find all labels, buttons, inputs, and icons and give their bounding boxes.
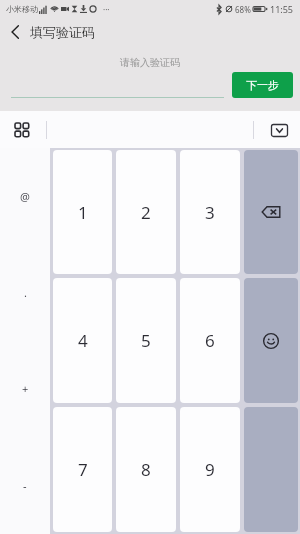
button[interactable]: 键盘布局 — [10, 118, 34, 142]
staticText: 8 — [141, 458, 151, 481]
button[interactable]: 收起键盘 — [266, 117, 292, 143]
button[interactable]: 功能键 — [244, 278, 298, 403]
staticText: 5 — [141, 329, 151, 352]
button[interactable]: - — [0, 437, 50, 534]
button[interactable]: 下一步 — [232, 72, 293, 98]
staticText: ··· — [103, 4, 110, 15]
button[interactable]: 5 — [116, 278, 176, 403]
staticText: 7 — [78, 458, 88, 481]
staticText: 6 — [205, 329, 215, 352]
button[interactable]: 返回 — [0, 18, 30, 46]
button[interactable]: 9 — [180, 407, 240, 532]
staticText: . — [24, 285, 27, 300]
button[interactable]: 6 — [180, 278, 240, 403]
staticText: 3 — [205, 201, 215, 224]
staticText: 4 — [78, 329, 88, 352]
button[interactable]: 7 — [53, 407, 112, 532]
button[interactable]: 1 — [53, 150, 112, 274]
staticText: 11:55 — [270, 3, 294, 15]
staticText: 9 — [205, 458, 215, 481]
button[interactable]: 功能键 — [244, 150, 298, 274]
button[interactable]: + — [0, 340, 50, 437]
button[interactable]: 8 — [116, 407, 176, 532]
staticText: - — [23, 478, 27, 493]
button[interactable]: 3 — [180, 150, 240, 274]
staticText: + — [22, 381, 29, 396]
staticText: 下一步 — [246, 78, 279, 92]
staticText: 小米移动 — [6, 4, 38, 14]
staticText: 请输入验证码 — [120, 56, 180, 69]
button[interactable]: @ — [0, 148, 50, 244]
staticText: 填写验证码 — [30, 24, 95, 40]
button[interactable]: 4 — [53, 278, 112, 403]
staticText: 2 — [141, 201, 151, 224]
staticText: 1 — [78, 201, 88, 224]
staticText: 68% — [235, 4, 251, 15]
button[interactable]: 2 — [116, 150, 176, 274]
staticText: @ — [20, 189, 30, 204]
